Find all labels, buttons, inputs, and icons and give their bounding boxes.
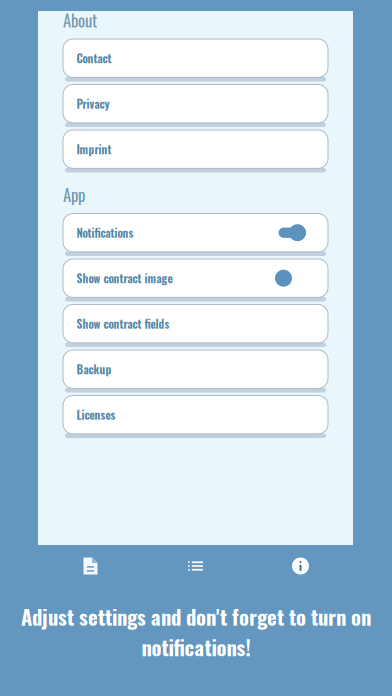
staticText: Privacy <box>76 95 109 112</box>
staticText: App <box>63 182 85 207</box>
button[interactable]: Privacy <box>63 84 328 130</box>
staticText: Imprint <box>76 141 111 158</box>
staticText: About <box>63 8 97 32</box>
button[interactable]: Show contract image <box>63 259 328 304</box>
button[interactable]: List <box>143 545 248 587</box>
button[interactable]: Info <box>248 545 353 587</box>
staticText: Contact <box>76 50 111 67</box>
button[interactable]: Licenses <box>63 395 328 441</box>
button[interactable]: Imprint <box>63 130 328 175</box>
staticText: Show contract image <box>76 270 172 287</box>
staticText: Adjust settings and don't forget to turn… <box>21 601 371 632</box>
button[interactable]: Notifications <box>63 213 328 259</box>
staticText: notifications! <box>141 632 250 662</box>
button[interactable]: Backup <box>63 350 328 395</box>
button[interactable]: Contact <box>63 39 328 84</box>
button[interactable]: Documents <box>38 545 143 587</box>
staticText: Show contract fields <box>76 315 169 332</box>
button[interactable]: Show contract fields <box>63 304 328 350</box>
staticText: Notifications <box>76 224 133 241</box>
staticText: Licenses <box>76 406 115 423</box>
staticText: Backup <box>76 361 111 378</box>
